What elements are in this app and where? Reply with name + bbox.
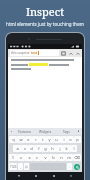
staticText: text — [31, 51, 37, 55]
staticText: t — [42, 137, 44, 142]
button[interactable]: ⇧ — [9, 154, 17, 161]
button[interactable]: a — [13, 145, 21, 152]
staticText: n — [60, 155, 63, 160]
staticText: k — [65, 146, 68, 151]
button[interactable]: r — [32, 136, 39, 143]
staticText: x — [28, 155, 31, 160]
staticText: c — [36, 155, 38, 160]
button[interactable]: u — [53, 136, 60, 143]
staticText: m — [67, 155, 71, 160]
button[interactable]: d — [28, 145, 35, 152]
staticText: o — [69, 137, 72, 142]
staticText: r — [35, 137, 37, 142]
button[interactable]: p — [74, 136, 81, 143]
button[interactable]: x — [25, 154, 33, 161]
staticText: f — [38, 146, 40, 151]
staticText: a — [16, 146, 19, 151]
button[interactable]: j — [56, 145, 63, 152]
button[interactable]: n — [57, 154, 65, 161]
staticText: s — [24, 146, 26, 151]
button[interactable]: Recents — [50, 172, 58, 180]
button[interactable]: Widgets — [35, 128, 56, 135]
staticText: e — [27, 137, 30, 142]
staticText: z — [20, 155, 22, 160]
staticText: j — [59, 146, 61, 151]
staticText: h — [51, 146, 54, 151]
staticText: this surprise — [11, 51, 31, 55]
button[interactable]: k — [63, 145, 70, 152]
button[interactable]: , — [18, 163, 23, 170]
button[interactable]: w — [17, 136, 25, 143]
button[interactable]: i — [60, 136, 67, 143]
staticText: l — [73, 146, 75, 151]
button[interactable]: ⌫ — [73, 154, 81, 161]
button[interactable]: . — [67, 163, 72, 170]
staticText: u — [55, 137, 58, 142]
staticText: p — [76, 137, 79, 142]
button[interactable]: l — [70, 145, 77, 152]
button[interactable]: Hide keyboard — [67, 172, 75, 180]
button[interactable]: c — [33, 154, 41, 161]
staticText: ?123 — [10, 165, 17, 169]
staticText: Tags — [63, 130, 70, 134]
button[interactable]: Tags — [56, 128, 77, 135]
button[interactable]: y — [46, 136, 53, 143]
staticText: Textarea — [18, 130, 31, 134]
staticText: html elements just by touching them — [0, 21, 90, 27]
button[interactable]: Back — [15, 172, 23, 180]
staticText: ⇧ — [11, 155, 15, 160]
button[interactable]: More options — [75, 51, 80, 56]
staticText: ⌫ — [74, 155, 80, 160]
button[interactable]: ☺ — [24, 163, 29, 170]
button[interactable]: f — [35, 145, 42, 152]
button[interactable]: b — [49, 154, 57, 161]
button[interactable]: t — [39, 136, 46, 143]
button[interactable]: v — [41, 154, 49, 161]
button[interactable]: Reload — [68, 51, 73, 56]
button[interactable]: o — [67, 136, 74, 143]
staticText: , — [20, 165, 21, 169]
staticText: Widgets — [39, 130, 52, 134]
staticText: q — [12, 137, 15, 142]
button[interactable]: ?123 — [9, 163, 17, 170]
staticText: d — [30, 146, 33, 151]
button[interactable]: h — [49, 145, 56, 152]
button[interactable]: Textarea — [13, 128, 35, 135]
other: Voice input — [77, 130, 80, 133]
button[interactable]: m — [65, 154, 73, 161]
staticText: g — [44, 146, 47, 151]
staticText: y — [48, 137, 51, 142]
staticText: b — [52, 155, 55, 160]
button[interactable]: Home — [32, 172, 40, 180]
staticText: v — [44, 155, 47, 160]
staticText: ☺ — [25, 165, 29, 168]
button[interactable]: s — [21, 145, 28, 152]
button[interactable]: q — [9, 136, 17, 143]
button[interactable]: z — [17, 154, 25, 161]
staticText: . — [69, 165, 70, 169]
button[interactable]: this surprise — [10, 50, 59, 56]
staticText: i — [63, 137, 65, 142]
staticText: Inspect — [0, 4, 90, 19]
button[interactable]: Search — [73, 163, 81, 170]
button[interactable]: e — [25, 136, 32, 143]
button[interactable]: g — [42, 145, 49, 152]
button[interactable]: Tabs — [61, 51, 66, 56]
staticText: w — [19, 137, 23, 142]
